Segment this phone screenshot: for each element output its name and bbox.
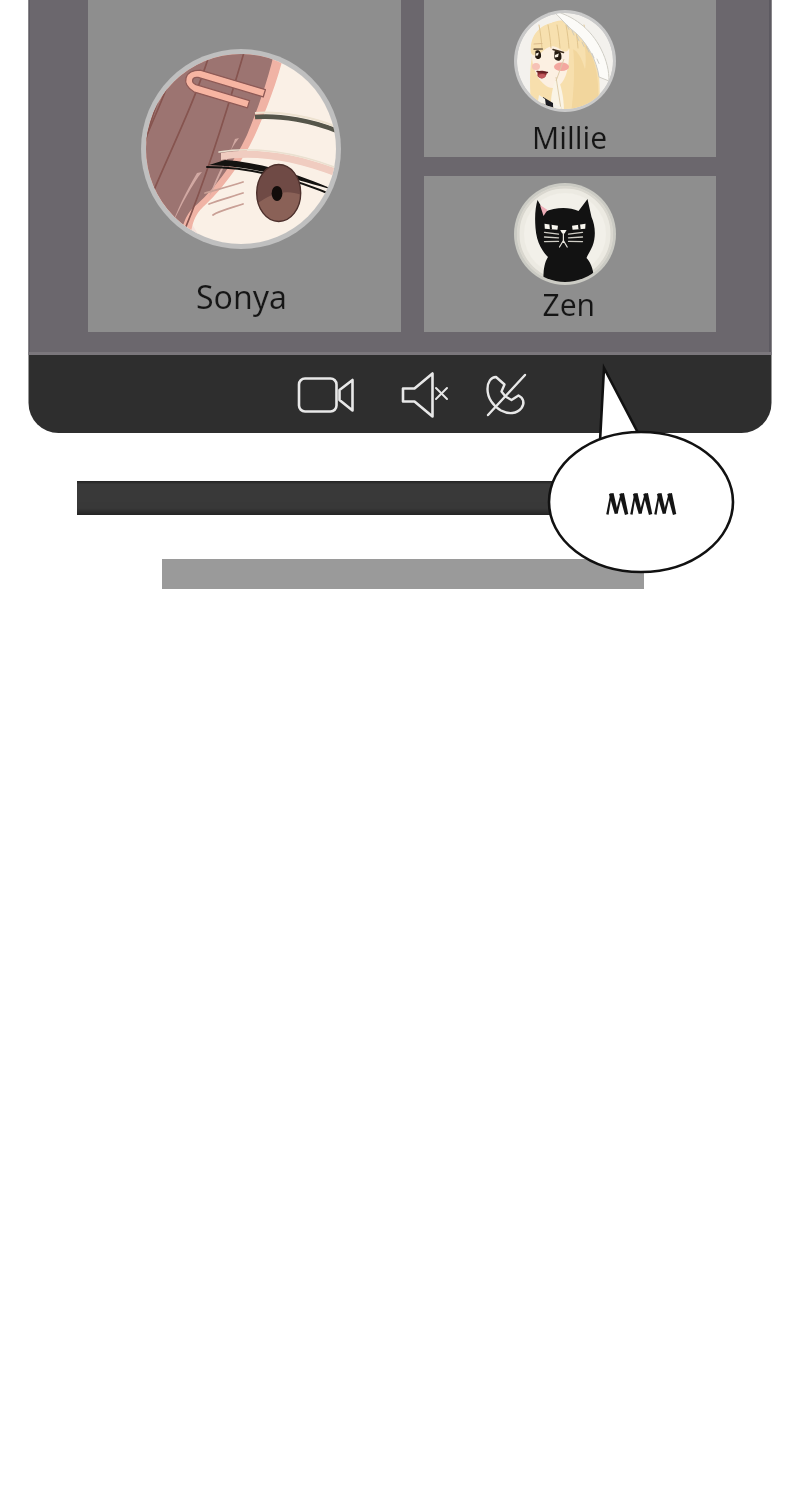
button[interactable]: Turn camera off (294, 363, 358, 427)
button[interactable]: End call (474, 363, 538, 427)
button[interactable]: Sonya, speaking (88, 0, 401, 333)
button[interactable]: Unmute speaker (391, 363, 455, 427)
button[interactable]: Millie (424, 0, 716, 157)
button[interactable]: Zen (424, 176, 716, 333)
